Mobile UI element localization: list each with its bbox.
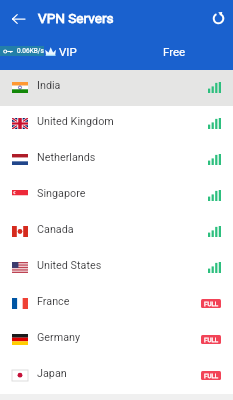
button[interactable]: Netherlands xyxy=(0,142,233,178)
staticText: FULL xyxy=(204,372,219,379)
button[interactable]: Japan xyxy=(0,358,233,394)
staticText: FULL xyxy=(204,300,219,307)
button[interactable]: Free xyxy=(116,36,233,70)
button[interactable]: United Kingdom xyxy=(0,106,233,142)
staticText: United Kingdom xyxy=(37,115,114,128)
staticText: India xyxy=(37,79,61,92)
staticText: Japan xyxy=(37,367,67,380)
button[interactable]: France xyxy=(0,286,233,322)
button[interactable]: Singapore xyxy=(0,178,233,214)
staticText: United States xyxy=(37,259,102,272)
staticText: FULL xyxy=(204,336,219,343)
staticText: Germany xyxy=(37,331,81,344)
staticText: Canada xyxy=(37,223,74,236)
button[interactable]: United States xyxy=(0,250,233,286)
button[interactable]: India xyxy=(0,70,233,106)
staticText: Singapore xyxy=(37,187,86,200)
staticText: 0.06KB/s xyxy=(17,47,44,55)
button[interactable]: Canada xyxy=(0,214,233,250)
staticText: Netherlands xyxy=(37,151,96,164)
staticText: France xyxy=(37,295,70,308)
button[interactable]: Refresh xyxy=(206,6,231,31)
button[interactable]: Germany xyxy=(0,322,233,358)
button[interactable]: VIP xyxy=(0,36,117,70)
staticText: VIP xyxy=(59,45,77,58)
button[interactable]: Back xyxy=(6,6,31,31)
staticText: VPN Servers xyxy=(38,10,114,26)
staticText: Free xyxy=(163,45,186,58)
